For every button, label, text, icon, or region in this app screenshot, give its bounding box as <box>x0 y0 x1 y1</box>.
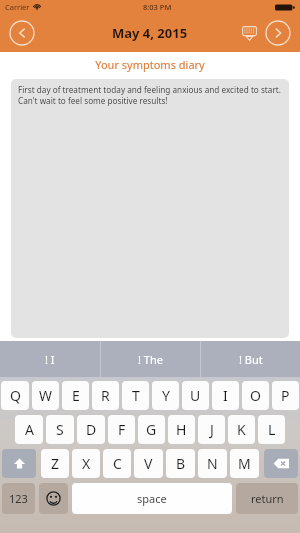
button[interactable]: Z <box>41 449 69 478</box>
staticText: E <box>72 386 80 405</box>
button[interactable]: Emoji <box>39 483 68 514</box>
staticText: N <box>207 454 218 473</box>
staticText: X <box>82 454 91 473</box>
staticText: W <box>39 386 53 405</box>
button[interactable]: E <box>62 381 89 410</box>
button[interactable]: Delete <box>264 449 298 478</box>
staticText: M <box>238 454 251 473</box>
staticText: O <box>250 386 261 405</box>
staticText: return <box>251 491 284 506</box>
button[interactable]: M <box>230 449 259 478</box>
staticText: H <box>176 420 187 439</box>
staticText: ! I <box>45 352 55 367</box>
button[interactable]: O <box>242 381 269 410</box>
staticText: A <box>25 420 34 439</box>
button[interactable]: space <box>72 483 232 514</box>
button[interactable]: N <box>198 449 227 478</box>
staticText: Z <box>51 454 60 473</box>
button[interactable]: L <box>258 415 285 444</box>
staticText: V <box>144 454 153 473</box>
staticText: May 4, 2015 <box>112 24 188 42</box>
button[interactable]: ! The <box>101 341 200 377</box>
staticText: ! The <box>138 352 163 367</box>
staticText: J <box>210 420 214 439</box>
staticText: C <box>113 454 122 473</box>
button[interactable]: Q <box>1 381 29 410</box>
button[interactable]: X <box>72 449 100 478</box>
button[interactable]: Next day <box>265 20 291 46</box>
staticText: space <box>137 491 167 506</box>
button[interactable]: C <box>103 449 131 478</box>
staticText: G <box>146 420 157 439</box>
staticText: Q <box>10 386 21 405</box>
button[interactable]: F <box>108 415 135 444</box>
staticText: 8:03 PM <box>143 2 172 12</box>
button[interactable]: P <box>272 381 299 410</box>
button[interactable]: Hide keyboard <box>240 24 258 42</box>
staticText: ! But <box>239 352 263 367</box>
staticText: 123 <box>9 491 28 506</box>
staticText: First day of treatment today and feeling… <box>18 84 281 106</box>
staticText: Your symptoms diary <box>0 57 300 72</box>
staticText: D <box>86 420 97 439</box>
staticText: R <box>101 386 110 405</box>
staticText: S <box>56 420 64 439</box>
staticText: Carrier <box>5 2 30 12</box>
button[interactable]: First day of treatment today and feeling… <box>11 79 289 338</box>
button[interactable]: S <box>46 415 74 444</box>
button[interactable]: 123 <box>2 483 35 514</box>
button[interactable]: Shift <box>2 449 36 478</box>
button[interactable]: B <box>166 449 195 478</box>
button[interactable]: ! But <box>201 341 300 377</box>
button[interactable]: V <box>134 449 163 478</box>
button[interactable]: H <box>168 415 195 444</box>
button[interactable]: G <box>138 415 165 444</box>
button[interactable]: T <box>122 381 149 410</box>
staticText: F <box>118 420 126 439</box>
button[interactable]: K <box>228 415 255 444</box>
button[interactable]: Previous day <box>9 20 35 46</box>
staticText: L <box>268 420 276 439</box>
button[interactable]: return <box>236 483 298 514</box>
staticText: U <box>190 386 201 405</box>
button[interactable]: A <box>15 415 43 444</box>
staticText: Y <box>162 386 170 405</box>
button[interactable]: W <box>32 381 59 410</box>
button[interactable]: Y <box>152 381 179 410</box>
button[interactable]: I <box>212 381 239 410</box>
button[interactable]: J <box>198 415 225 444</box>
button[interactable]: D <box>77 415 105 444</box>
staticText: K <box>237 420 246 439</box>
staticText: B <box>176 454 186 473</box>
staticText: P <box>281 386 290 405</box>
button[interactable]: U <box>182 381 209 410</box>
button[interactable]: R <box>92 381 119 410</box>
staticText: T <box>132 386 140 405</box>
button[interactable]: ! I <box>0 341 100 377</box>
staticText: I <box>223 386 228 405</box>
